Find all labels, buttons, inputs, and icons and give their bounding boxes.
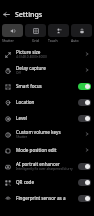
staticText: Shutter sound	[2, 38, 23, 43]
button[interactable]: Delay capture	[83, 66, 91, 74]
button[interactable]: Location	[0, 94, 94, 110]
button[interactable]: Off	[78, 163, 91, 170]
button[interactable]: Off	[78, 195, 91, 202]
button[interactable]: Custom volume keys	[83, 130, 91, 138]
staticText: 4:3 (48.0 4000×3000)	[16, 55, 47, 59]
button[interactable]: Custom volume keys	[0, 126, 94, 142]
button[interactable]: QR code	[0, 174, 94, 190]
staticText: Custom volume keys	[16, 129, 61, 135]
staticText: Mode position edit	[16, 147, 57, 153]
button[interactable]: Grid	[25, 24, 46, 43]
staticText: Shutter	[16, 135, 28, 139]
button[interactable]: Off	[78, 99, 91, 106]
button[interactable]: On	[78, 83, 91, 90]
button[interactable]: Back	[0, 8, 13, 21]
staticText: QR code	[16, 179, 35, 185]
staticText: AI portrait enhancer	[16, 161, 60, 167]
button[interactable]: Mode position edit	[0, 142, 94, 158]
staticText: Intelligently fix over-sharpened blurry …	[16, 167, 76, 171]
staticText: Auto watermark	[71, 38, 92, 43]
button[interactable]: Picture size	[0, 46, 94, 62]
button[interactable]: Fingerprint sensor as a shutter	[0, 190, 94, 206]
staticText: Grid	[32, 38, 39, 43]
button[interactable]: Off	[78, 115, 91, 122]
button[interactable]: Auto watermark	[71, 24, 92, 43]
staticText: Smart focus	[16, 83, 42, 89]
staticText: Off	[16, 71, 21, 75]
staticText: Touch capture	[48, 38, 69, 43]
button[interactable]: Mode position edit	[83, 146, 91, 154]
staticText: Level	[16, 115, 28, 121]
button[interactable]: Level	[0, 110, 94, 126]
button[interactable]: AI portrait enhancer	[0, 158, 94, 174]
button[interactable]: Delay capture	[0, 62, 94, 78]
staticText: Picture size	[16, 49, 41, 55]
button[interactable]: Touch capture	[48, 24, 69, 43]
staticText: Fingerprint sensor as a shutter	[16, 195, 76, 201]
button[interactable]: Picture size	[83, 50, 91, 58]
staticText: Settings	[15, 10, 43, 20]
button[interactable]: Shutter sound	[2, 24, 23, 43]
button[interactable]: Off	[78, 179, 91, 186]
staticText: Location	[16, 99, 35, 105]
staticText: Delay capture	[16, 65, 46, 71]
button[interactable]: Smart focus	[0, 78, 94, 94]
